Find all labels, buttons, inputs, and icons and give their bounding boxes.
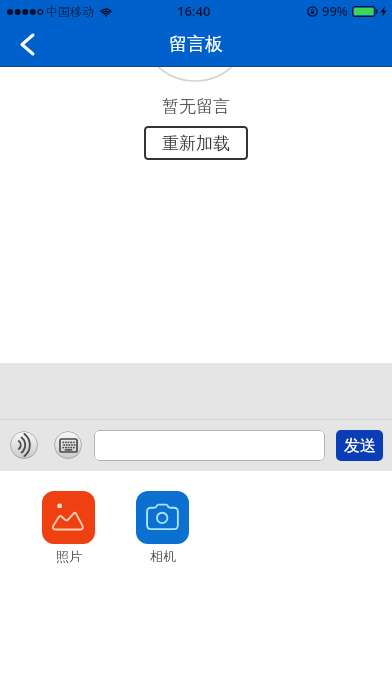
staticText: 中国移动 [46, 4, 94, 19]
staticText: 16:40 [177, 2, 211, 20]
button[interactable]: 发送 [336, 430, 383, 461]
button[interactable]: Keyboard input [54, 431, 82, 459]
staticText: 相机 [150, 548, 176, 564]
staticText: 照片 [56, 548, 82, 564]
staticText: 99% [322, 2, 348, 20]
button[interactable]: 照片 [42, 491, 95, 564]
staticText: 留言板 [169, 33, 223, 56]
staticText: 发送 [344, 436, 376, 456]
button[interactable]: 重新加载 [144, 126, 248, 160]
button[interactable]: 相机 [136, 491, 189, 564]
button[interactable] [94, 430, 325, 461]
button[interactable]: Voice input [10, 431, 38, 459]
staticText: 重新加载 [162, 133, 230, 154]
staticText: 暂无留言 [162, 96, 230, 117]
button[interactable]: Back [9, 27, 49, 62]
